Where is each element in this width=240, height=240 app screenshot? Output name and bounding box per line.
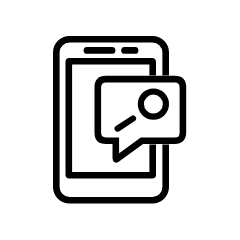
button[interactable]: Search messages on phone xyxy=(0,0,240,240)
